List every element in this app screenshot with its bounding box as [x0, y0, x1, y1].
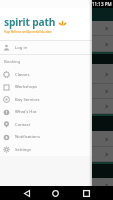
staticText: Classes [15, 72, 30, 78]
staticText: 11:13 PM [92, 1, 112, 7]
button[interactable]: What's Hot [0, 106, 92, 118]
staticText: Buy Services [15, 97, 40, 103]
button[interactable]: Log in [0, 41, 92, 54]
button[interactable]: Contact [0, 118, 92, 131]
button[interactable]: Classes [0, 68, 92, 81]
button[interactable]: Buy Services [0, 93, 92, 106]
staticText: Yoga Wellness and Ayurveda Education [4, 30, 52, 34]
button[interactable]: Back [19, 186, 35, 200]
staticText: Settings [15, 147, 31, 153]
staticText: Booking [4, 59, 21, 65]
staticText: Notifications [15, 134, 40, 140]
staticText: Log in [15, 45, 28, 51]
staticText: spirit path [4, 15, 56, 29]
button[interactable]: Notifications [0, 131, 92, 143]
button[interactable]: Workshops [0, 81, 92, 93]
staticText: What's Hot [15, 109, 37, 115]
button[interactable]: Settings [0, 143, 92, 156]
staticText: Workshops [15, 84, 38, 90]
staticText: Contact [15, 122, 31, 128]
button[interactable]: Recent apps [78, 186, 94, 200]
button[interactable]: Home [47, 186, 63, 200]
